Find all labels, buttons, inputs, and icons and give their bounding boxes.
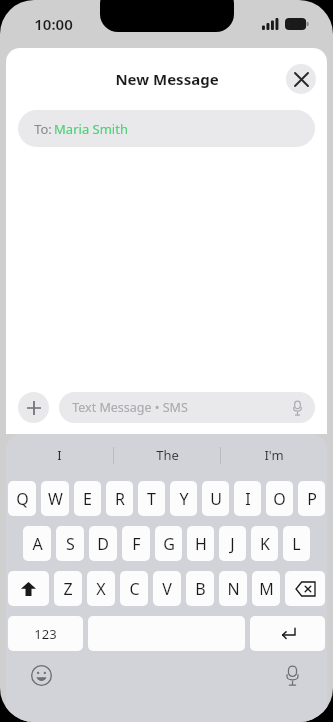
button[interactable]: 123 — [8, 616, 83, 651]
button[interactable]: X — [87, 571, 115, 606]
button[interactable]: Shift — [8, 571, 49, 606]
staticText: P — [307, 488, 317, 510]
button[interactable]: L — [283, 526, 310, 561]
button[interactable]: The — [114, 434, 220, 476]
button[interactable]: I'm — [221, 434, 327, 476]
staticText: T — [147, 488, 156, 510]
staticText: To: — [32, 120, 54, 138]
staticText: 123 — [34, 625, 57, 643]
staticText: New Message — [115, 69, 219, 89]
button[interactable]: Backspace — [285, 571, 325, 606]
staticText: S — [66, 533, 75, 555]
staticText: D — [97, 533, 109, 555]
button[interactable]: Q — [8, 481, 36, 516]
button[interactable]: H — [187, 526, 214, 561]
staticText: C — [129, 578, 140, 600]
staticText: The — [156, 446, 179, 464]
button[interactable]: F — [122, 526, 150, 561]
staticText: G — [163, 533, 175, 555]
button[interactable]: Z — [54, 571, 82, 606]
button[interactable]: R — [106, 481, 133, 516]
staticText: O — [273, 488, 286, 510]
staticText: Text Message • SMS — [72, 399, 188, 416]
button[interactable]: I — [6, 434, 113, 476]
button[interactable]: I — [234, 481, 261, 516]
button[interactable]: U — [202, 481, 229, 516]
button[interactable]: T — [138, 481, 165, 516]
staticText: U — [210, 488, 222, 510]
staticText: E — [83, 488, 92, 510]
staticText: I — [57, 446, 62, 464]
staticText: N — [227, 578, 240, 600]
staticText: 10:00 — [34, 14, 73, 34]
button[interactable]: Add attachment — [18, 392, 49, 423]
button[interactable]: E — [74, 481, 101, 516]
staticText: H — [195, 533, 207, 555]
staticText: I'm — [264, 446, 284, 464]
button[interactable]: D — [89, 526, 117, 561]
button[interactable]: J — [219, 526, 246, 561]
button[interactable]: P — [298, 481, 325, 516]
button[interactable]: M — [252, 571, 280, 606]
staticText: K — [260, 533, 270, 555]
button[interactable]: S — [56, 526, 84, 561]
staticText: Maria Smith — [54, 120, 128, 138]
staticText: Z — [63, 578, 73, 600]
staticText: Y — [179, 488, 189, 510]
button[interactable]: Y — [170, 481, 197, 516]
staticText: L — [292, 533, 301, 555]
button[interactable]: O — [266, 481, 293, 516]
button[interactable]: To: — [18, 110, 315, 147]
staticText: I — [245, 488, 251, 510]
button[interactable]: G — [155, 526, 182, 561]
staticText: Q — [16, 488, 29, 510]
staticText: V — [162, 578, 172, 600]
button[interactable]: V — [153, 571, 181, 606]
staticText: M — [259, 578, 274, 600]
staticText: A — [32, 533, 43, 555]
button[interactable]: K — [251, 526, 278, 561]
staticText: F — [132, 533, 141, 555]
button[interactable]: C — [120, 571, 148, 606]
button[interactable]: Close — [286, 64, 316, 94]
button[interactable]: Voice input — [279, 662, 305, 688]
button[interactable]: Dictate — [288, 399, 306, 417]
button[interactable]: Emoji — [28, 662, 54, 688]
button[interactable]: B — [186, 571, 214, 606]
staticText: R — [115, 488, 125, 510]
button[interactable]: N — [219, 571, 247, 606]
button[interactable]: Text Message • SMS — [59, 392, 315, 423]
button[interactable]: A — [23, 526, 51, 561]
staticText: W — [48, 488, 63, 510]
staticText: X — [96, 578, 106, 600]
staticText: J — [230, 533, 235, 555]
button[interactable]: Return — [250, 616, 325, 651]
staticText: B — [195, 578, 206, 600]
button[interactable]: W — [41, 481, 69, 516]
